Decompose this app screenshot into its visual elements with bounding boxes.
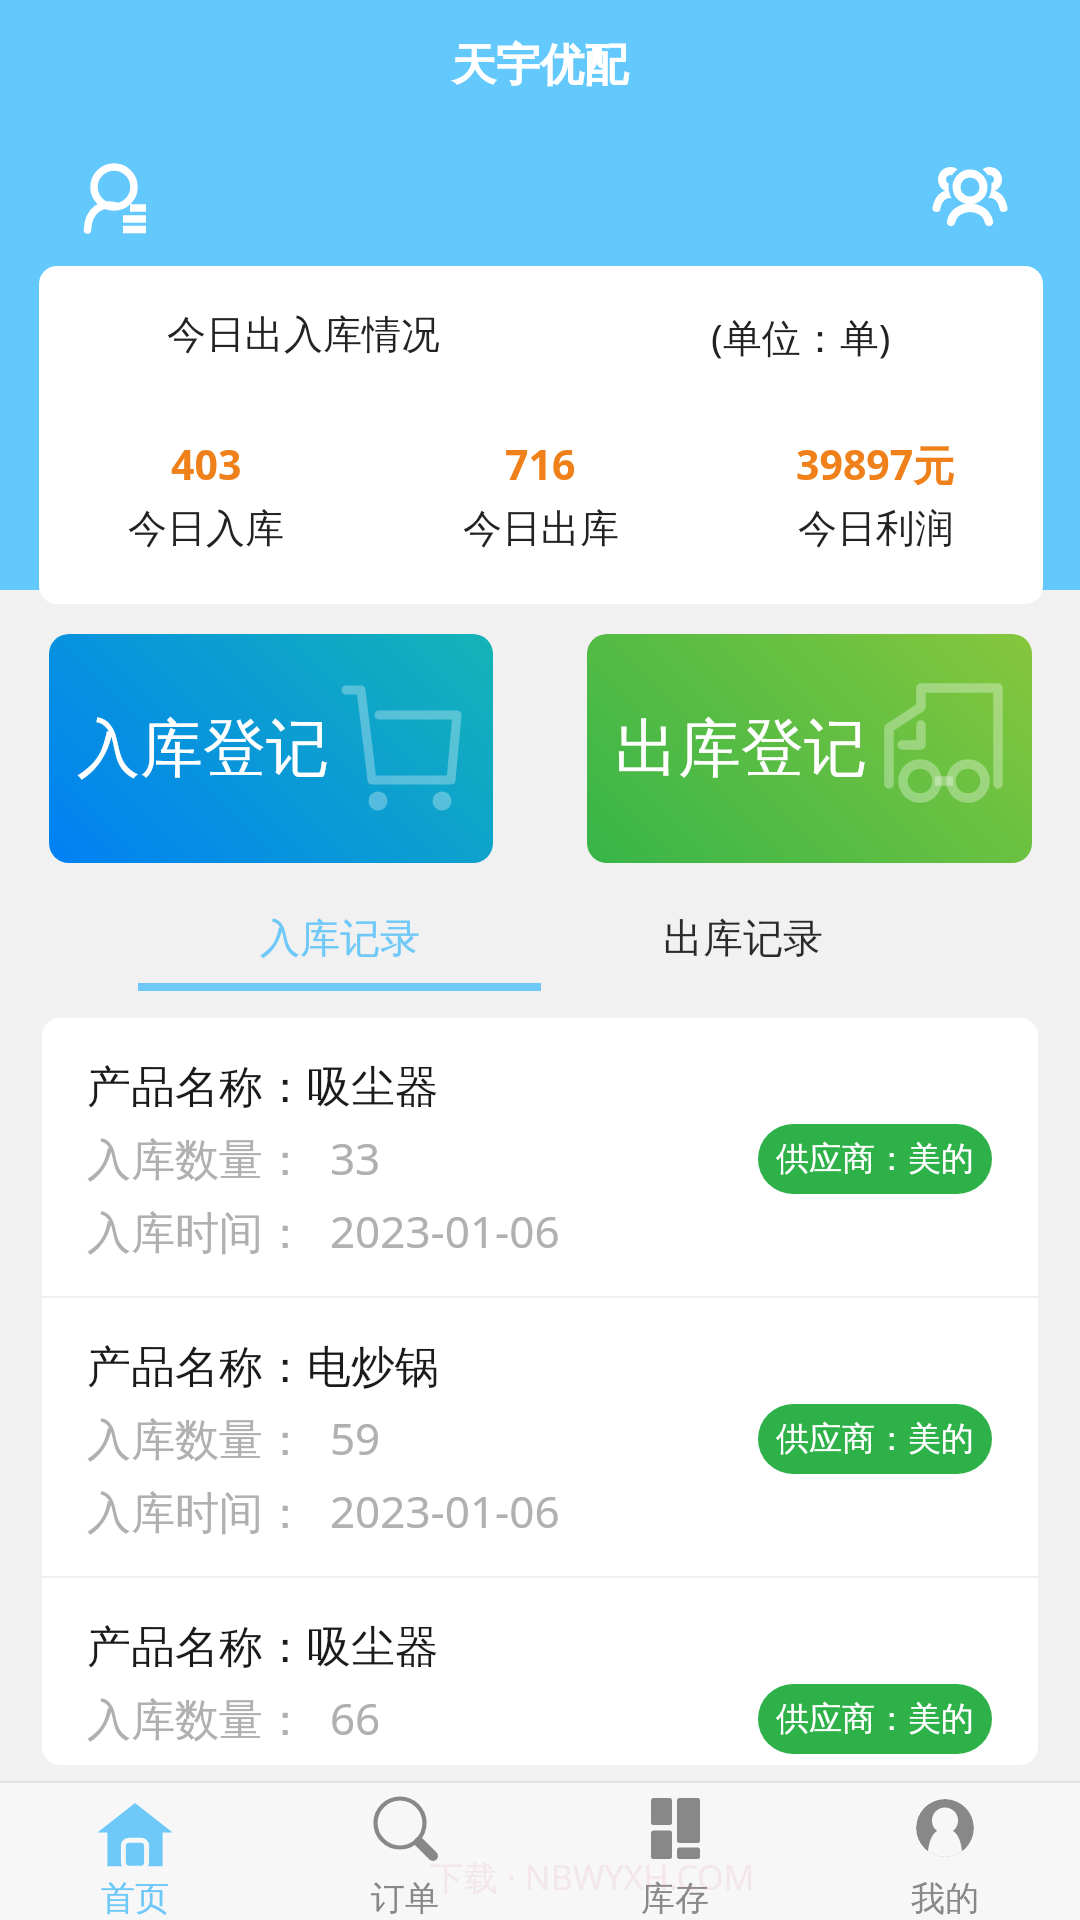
staticText: 入库时间： 2023-01-06 — [87, 1481, 560, 1541]
button[interactable]: 产品名称：吸尘器 — [42, 1018, 1038, 1296]
staticText: 入库数量： 66 — [87, 1688, 381, 1748]
staticText: 入库记录 — [260, 913, 420, 963]
staticText: 库存 — [641, 1877, 709, 1920]
button[interactable]: 我的 — [810, 1783, 1080, 1920]
button[interactable]: 首页 — [0, 1783, 270, 1920]
staticText: 供应商：美的 — [776, 1698, 974, 1740]
button[interactable]: 产品名称：吸尘器 — [42, 1578, 1038, 1765]
staticText: 入库时间： 2023-01-06 — [87, 1201, 560, 1261]
button[interactable]: 订单 — [270, 1783, 540, 1920]
button[interactable]: 入库记录 — [138, 899, 541, 1009]
button[interactable]: 入库登记 — [49, 634, 493, 863]
staticText: 716 — [505, 436, 576, 492]
staticText: 供应商：美的 — [776, 1138, 974, 1180]
staticText: 403 — [171, 436, 242, 492]
staticText: 今日出入库情况 — [167, 310, 440, 359]
staticText: 订单 — [371, 1877, 439, 1920]
button[interactable]: 供应商：美的 — [758, 1124, 992, 1194]
staticText: 今日利润 — [798, 504, 954, 553]
staticText: 天宇优配 — [452, 38, 628, 93]
staticText: 产品名称：吸尘器 — [87, 1620, 439, 1675]
staticText: 产品名称：电炒锅 — [87, 1340, 439, 1395]
staticText: 出库记录 — [663, 913, 823, 963]
button[interactable]: 出库记录 — [541, 899, 944, 1009]
staticText: 首页 — [101, 1877, 169, 1920]
staticText: (单位：单) — [711, 310, 891, 363]
staticText: 出库登记 — [615, 709, 867, 788]
button[interactable]: Customer list — [71, 150, 167, 246]
staticText: 入库登记 — [77, 709, 329, 788]
staticText: 入库数量： 59 — [87, 1408, 381, 1468]
button[interactable]: 供应商：美的 — [758, 1684, 992, 1754]
staticText: 产品名称：吸尘器 — [87, 1060, 439, 1115]
button[interactable]: 供应商：美的 — [758, 1404, 992, 1474]
staticText: 今日出库 — [463, 504, 619, 553]
staticText: 下载 · NBWYXH.COM — [430, 1854, 755, 1900]
staticText: 39897元 — [796, 436, 955, 492]
button[interactable]: 出库登记 — [587, 634, 1032, 863]
staticText: 供应商：美的 — [776, 1418, 974, 1460]
staticText: 今日入库 — [128, 504, 284, 553]
button[interactable]: 库存 — [540, 1783, 810, 1920]
staticText: 我的 — [911, 1877, 979, 1920]
staticText: 入库数量： 33 — [87, 1128, 381, 1188]
button[interactable]: 产品名称：电炒锅 — [42, 1298, 1038, 1576]
button[interactable]: Suppliers — [931, 165, 1011, 245]
